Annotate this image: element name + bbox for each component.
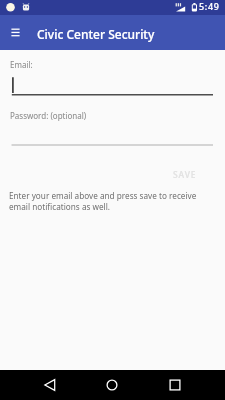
button[interactable]: Email input — [9, 72, 213, 96]
button[interactable]: Open navigation menu — [0, 15, 31, 46]
staticText: Password: (optional) — [10, 110, 87, 121]
staticText: Enter your email above and press save to… — [9, 190, 207, 212]
button[interactable]: Recent apps — [160, 370, 190, 400]
staticText: Email: — [10, 59, 33, 70]
button[interactable]: SAVE — [167, 164, 203, 186]
button[interactable]: Home — [97, 370, 127, 400]
button[interactable]: Password input — [9, 128, 213, 148]
staticText: 5:49 — [199, 0, 220, 12]
staticText: SAVE — [173, 169, 197, 181]
staticText: Civic Center Security — [37, 26, 155, 42]
button[interactable]: Back — [35, 370, 65, 400]
